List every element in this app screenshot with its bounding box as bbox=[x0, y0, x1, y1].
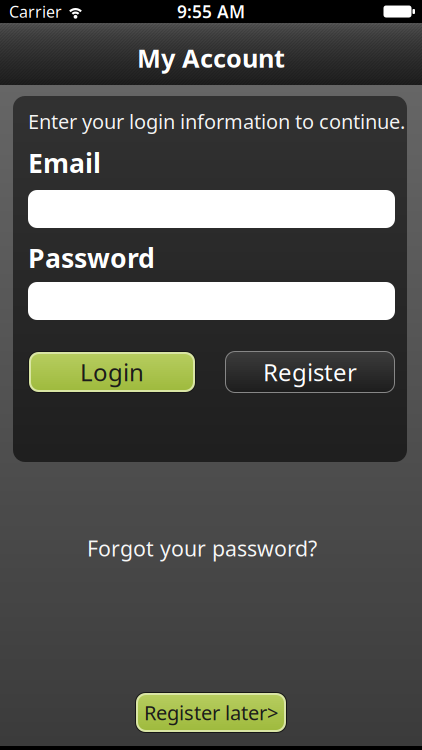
button[interactable]: Email bbox=[28, 190, 395, 228]
staticText: 9:55 AM bbox=[177, 0, 245, 23]
staticText: Email bbox=[28, 145, 101, 180]
button[interactable]: Login bbox=[28, 351, 196, 393]
staticText: Register later> bbox=[144, 699, 278, 726]
staticText: Register bbox=[263, 356, 357, 388]
button[interactable]: Register later> bbox=[135, 692, 287, 733]
staticText: Carrier bbox=[9, 1, 62, 22]
button[interactable]: Forgot your password? bbox=[87, 534, 317, 562]
staticText: Password bbox=[28, 240, 155, 275]
button[interactable]: Register bbox=[225, 351, 395, 393]
staticText: Enter your login information to continue… bbox=[28, 108, 405, 135]
staticText: My Account bbox=[137, 41, 285, 75]
staticText: Login bbox=[80, 356, 144, 388]
button[interactable]: Password bbox=[28, 282, 395, 320]
staticText: Forgot your password? bbox=[87, 534, 317, 562]
